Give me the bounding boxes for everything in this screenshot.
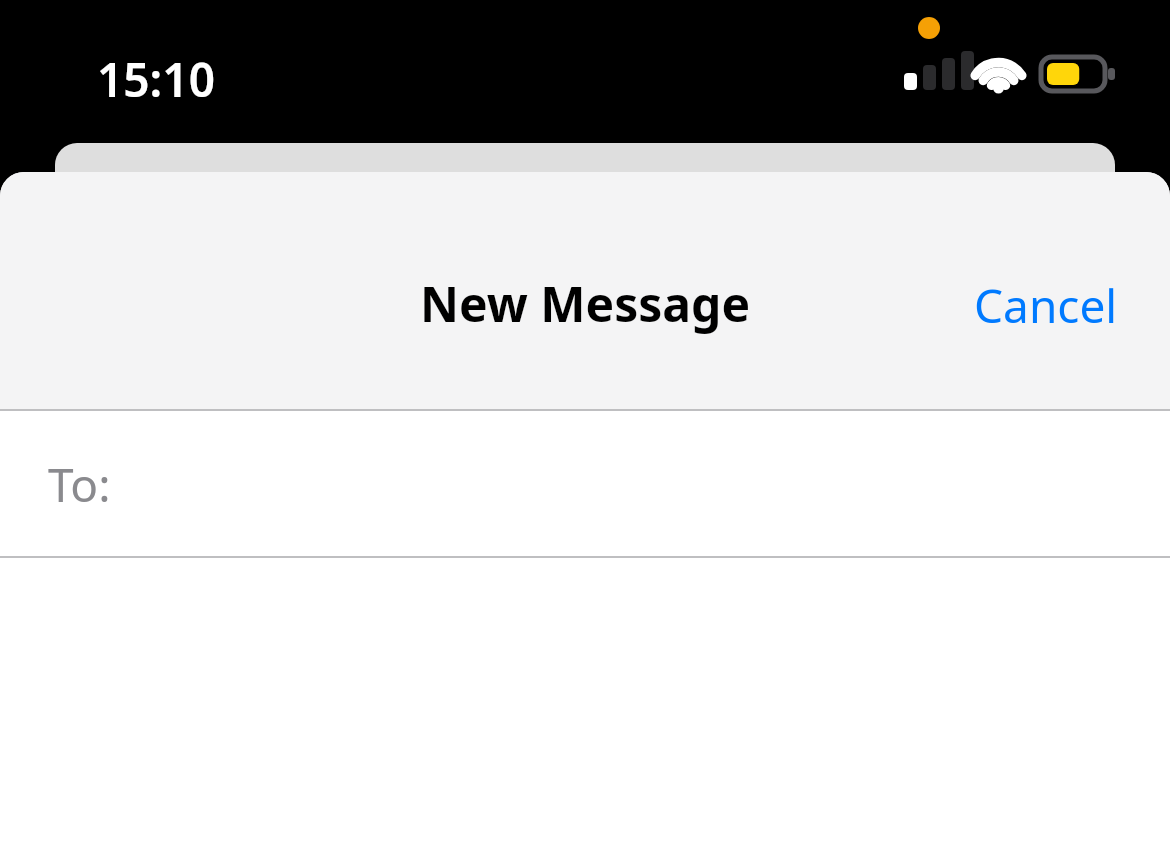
staticText: New Message: [0, 271, 1170, 336]
other: Cellular signal: [900, 50, 970, 95]
staticText: To:: [48, 453, 111, 516]
staticText: 15:10: [97, 48, 215, 111]
other: Battery, low power mode: [1038, 50, 1116, 95]
staticText: Cancel: [974, 274, 1118, 337]
button[interactable]: To:: [0, 411, 1170, 556]
button[interactable]: Cancel: [922, 268, 1170, 343]
other: Wi-Fi: [970, 50, 1028, 95]
